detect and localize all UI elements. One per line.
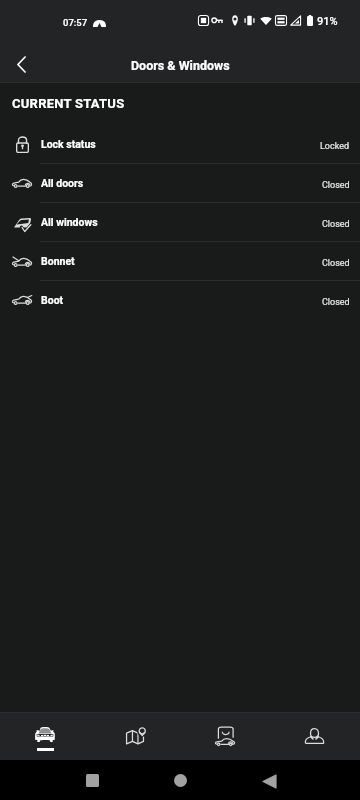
button[interactable]: Shop — [180, 712, 270, 760]
button[interactable]: Vehicle — [0, 712, 90, 760]
button[interactable]: Boot — [0, 281, 360, 320]
staticText: Locked — [320, 141, 350, 152]
staticText: All doors — [41, 177, 84, 189]
button[interactable]: Back — [0, 43, 42, 85]
staticText: All windows — [41, 216, 98, 228]
button[interactable]: Home — [165, 765, 196, 796]
staticText: Closed — [322, 180, 350, 191]
button[interactable]: All doors — [0, 164, 360, 203]
button[interactable]: All windows — [0, 203, 360, 242]
button[interactable]: Recents — [77, 765, 108, 796]
staticText: Boot — [41, 294, 64, 306]
button[interactable]: Map — [90, 712, 180, 760]
staticText: Doors & Windows — [131, 58, 230, 73]
staticText: Bonnet — [41, 255, 75, 267]
staticText: 91% — [317, 15, 338, 28]
staticText: Closed — [322, 258, 350, 269]
staticText: 07:57 — [63, 17, 88, 28]
staticText: Closed — [322, 219, 350, 230]
button[interactable]: Lock status — [0, 125, 360, 164]
button[interactable]: Bonnet — [0, 242, 360, 281]
button[interactable]: Profile — [270, 712, 360, 760]
staticText: CURRENT STATUS — [12, 96, 125, 111]
staticText: Closed — [322, 297, 350, 308]
staticText: Lock status — [41, 138, 96, 150]
button[interactable]: Back — [254, 766, 285, 797]
